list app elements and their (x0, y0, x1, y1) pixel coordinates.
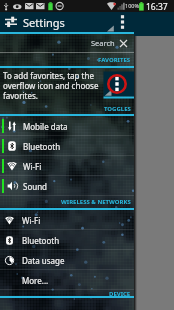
staticText: Bluetooth (23, 141, 61, 152)
button[interactable]: Search (0, 34, 134, 52)
other: Close search (119, 39, 128, 48)
button[interactable]: Bluetooth (0, 230, 134, 250)
staticText: Settings (23, 15, 65, 30)
button[interactable]: More... (0, 270, 134, 290)
staticText: DEVICE (109, 290, 131, 296)
button[interactable]: Sound (0, 176, 134, 196)
staticText: Data usage (22, 255, 65, 266)
staticText: Mobile data (23, 121, 68, 132)
staticText: More... (22, 275, 49, 286)
staticText: TOGGLES (104, 105, 131, 113)
button[interactable]: Data usage (0, 250, 134, 270)
staticText: Bluetooth (22, 235, 60, 246)
staticText: WIRELESS & NETWORKS (61, 198, 131, 206)
staticText: Search (91, 38, 115, 48)
button[interactable]: Wi-Fi (0, 210, 134, 230)
staticText: FAVORITES (98, 56, 131, 64)
button[interactable]: Wi-Fi (0, 156, 134, 176)
staticText: Wi-Fi (23, 161, 42, 172)
button[interactable]: More options (117, 12, 128, 32)
staticText: 100% (125, 2, 140, 9)
staticText: Sound (23, 181, 48, 192)
button[interactable]: Bluetooth (0, 136, 134, 156)
staticText: To add favorites, tap the overflow icon … (3, 70, 99, 101)
staticText: Wi-Fi (22, 215, 41, 226)
staticText: 16:37 (146, 1, 168, 13)
button[interactable]: Mobile data (0, 116, 134, 136)
